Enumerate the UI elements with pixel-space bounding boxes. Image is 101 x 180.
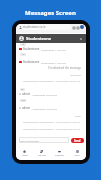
staticText: Studentzone xyxy=(23,60,40,64)
staticText: ok xyxy=(22,53,25,56)
staticText: studentzone.co.in xyxy=(23,25,46,29)
staticText: admin xyxy=(22,106,31,110)
staticText: 07/06/2023 11:25 AM xyxy=(41,61,66,64)
staticText: Courses xyxy=(38,154,46,157)
staticText: Studentzone Studentzone 12/06/2023 10:20… xyxy=(23,79,81,82)
button[interactable]: Account xyxy=(80,25,84,29)
staticText: sure xyxy=(21,99,26,102)
staticText: Type a message xyxy=(20,139,39,142)
button[interactable]: ok xyxy=(20,53,26,56)
button[interactable]: Browser menu xyxy=(76,26,79,29)
staticText: Home xyxy=(22,154,28,157)
button[interactable]: Studentzone xyxy=(19,60,66,64)
staticText: ok xyxy=(21,88,24,91)
button[interactable]: Home xyxy=(16,150,33,157)
staticText: Studentzone Studentzone 13/06/2023 02:10… xyxy=(23,127,81,130)
staticText: admin xyxy=(22,92,31,96)
button[interactable]: ok xyxy=(20,88,25,91)
button[interactable]: admin xyxy=(19,106,57,110)
button[interactable]: Tabs xyxy=(72,26,75,29)
staticText: Studentzone Studentzone 13/06/2023 01:40… xyxy=(23,120,81,123)
button[interactable]: sure xyxy=(20,99,26,102)
staticText: I've attached the message xyxy=(48,66,81,70)
staticText: Messages Screen xyxy=(25,9,76,16)
button[interactable]: studentzone.co.in xyxy=(19,24,70,30)
button[interactable]: Courses xyxy=(33,150,50,157)
button[interactable]: Hi xyxy=(20,43,26,46)
staticText: Studentzone xyxy=(26,36,52,41)
staticText: Hi xyxy=(22,43,25,46)
button[interactable]: Type a message xyxy=(20,137,68,143)
staticText: 13/06/2023 01:05 PM xyxy=(32,93,57,96)
staticText: More xyxy=(74,154,80,157)
button[interactable]: Studentzone xyxy=(19,47,66,51)
staticText: Read xyxy=(75,115,81,118)
button[interactable]: More xyxy=(68,150,86,157)
staticText: Click here xyxy=(70,73,81,76)
button[interactable]: Calendar xyxy=(50,150,68,157)
button[interactable]: admin xyxy=(19,92,57,96)
button[interactable]: Open menu xyxy=(79,37,83,41)
staticText: 07/06/2023 11:23 AM xyxy=(41,48,66,51)
staticText: 13/06/2023 01:20 PM xyxy=(32,107,57,110)
staticText: Studentzone xyxy=(23,47,40,51)
staticText: Send xyxy=(74,139,81,143)
button[interactable]: Send xyxy=(71,138,84,143)
staticText: Calendar xyxy=(55,154,64,157)
